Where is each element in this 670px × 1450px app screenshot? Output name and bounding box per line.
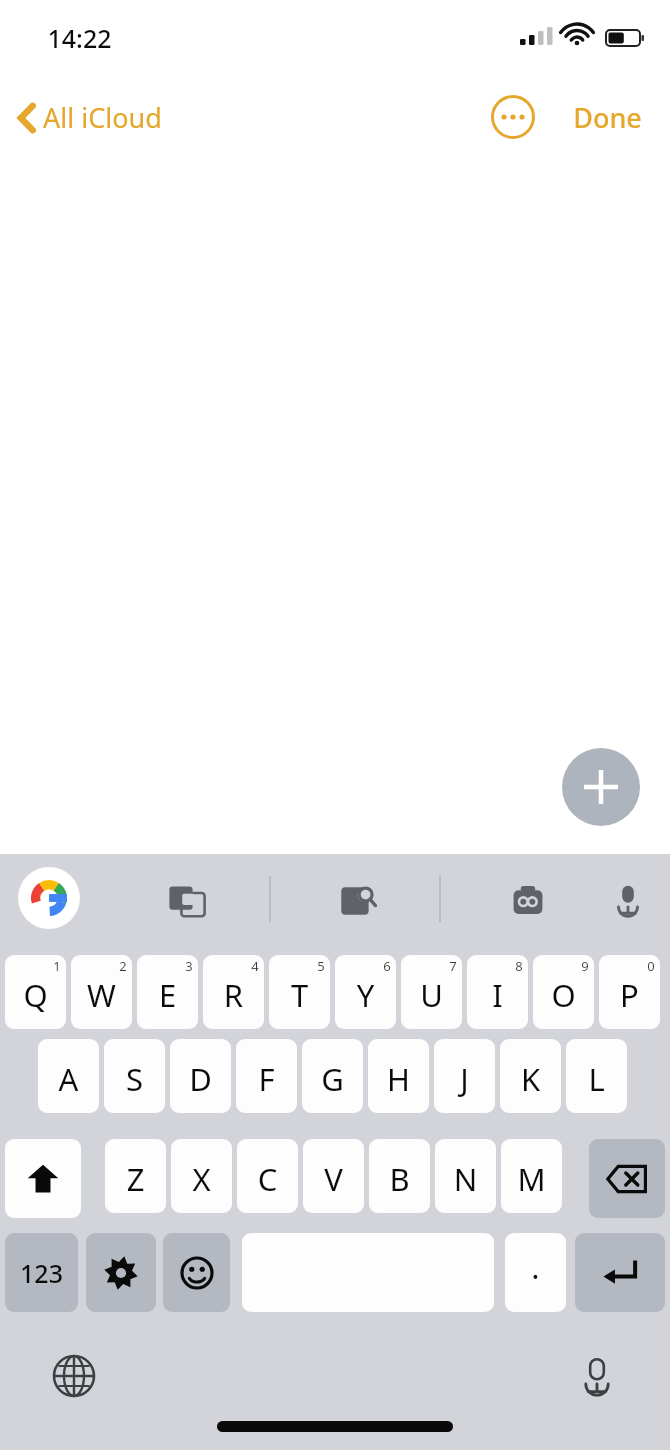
button[interactable]: Add note (562, 748, 640, 826)
button[interactable]: J (434, 1039, 495, 1113)
staticText: 4 (251, 957, 259, 975)
button[interactable]: R (203, 955, 264, 1029)
button[interactable]: Stickers (499, 872, 557, 930)
staticText: G (302, 1058, 363, 1100)
staticText: 5 (317, 957, 325, 975)
staticText: S (104, 1058, 165, 1100)
button[interactable]: Y (335, 955, 396, 1029)
staticText: 7 (449, 957, 457, 975)
button[interactable]: D (170, 1039, 231, 1113)
button[interactable]: N (435, 1139, 496, 1213)
staticText: W (71, 974, 132, 1016)
button[interactable]: Image search (329, 872, 387, 930)
staticText: Y (335, 974, 396, 1016)
button[interactable]: A (38, 1039, 99, 1113)
staticText: U (401, 974, 462, 1016)
staticText: N (435, 1158, 496, 1200)
staticText: P (599, 974, 660, 1016)
staticText: K (500, 1058, 561, 1100)
staticText: I (467, 974, 528, 1016)
button[interactable]: Translate (158, 872, 216, 930)
staticText: 0 (647, 957, 655, 975)
button[interactable]: Voice input (600, 872, 656, 928)
staticText: Q (5, 974, 66, 1016)
staticText: A (38, 1058, 99, 1100)
button[interactable]: Q (5, 955, 66, 1029)
staticText: X (171, 1158, 232, 1200)
staticText: M (501, 1158, 562, 1200)
button[interactable]: L (566, 1039, 627, 1113)
button[interactable]: I (467, 955, 528, 1029)
button[interactable]: Voice typing (565, 1344, 629, 1408)
staticText: T (269, 974, 330, 1016)
staticText: B (369, 1158, 430, 1200)
staticText: 1 (53, 957, 61, 975)
staticText: 14:22 (47, 21, 112, 55)
button[interactable]: V (303, 1139, 364, 1213)
staticText: J (434, 1058, 495, 1100)
button[interactable]: B (369, 1139, 430, 1213)
staticText: 3 (185, 957, 193, 975)
staticText: V (303, 1158, 364, 1200)
button[interactable]: Change language (42, 1344, 106, 1408)
button[interactable]: Enter (575, 1233, 665, 1312)
staticText: Done (573, 99, 642, 136)
button[interactable]: W (71, 955, 132, 1029)
staticText: 8 (515, 957, 523, 975)
staticText: D (170, 1058, 231, 1100)
button[interactable]: Google search (18, 867, 80, 929)
staticText: O (533, 974, 594, 1016)
staticText: E (137, 974, 198, 1016)
button[interactable]: F (236, 1039, 297, 1113)
staticText: C (237, 1158, 298, 1200)
button[interactable]: Done (565, 93, 650, 142)
button[interactable]: E (137, 955, 198, 1029)
staticText: 9 (581, 957, 589, 975)
button[interactable]: X (171, 1139, 232, 1213)
button[interactable]: U (401, 955, 462, 1029)
staticText: L (566, 1058, 627, 1100)
staticText: R (203, 974, 264, 1016)
staticText: 123 (20, 1256, 63, 1290)
button[interactable]: H (368, 1039, 429, 1113)
button[interactable]: Z (105, 1139, 166, 1213)
button[interactable]: 123 (5, 1233, 78, 1312)
button[interactable]: K (500, 1039, 561, 1113)
button[interactable]: . (505, 1233, 566, 1312)
button[interactable]: More options (486, 90, 540, 144)
button[interactable]: O (533, 955, 594, 1029)
staticText: F (236, 1058, 297, 1100)
button[interactable]: C (237, 1139, 298, 1213)
staticText: Z (105, 1158, 166, 1200)
button[interactable]: P (599, 955, 660, 1029)
button[interactable]: Backspace (589, 1139, 665, 1218)
button[interactable]: S (104, 1039, 165, 1113)
staticText: . (531, 1246, 540, 1288)
button[interactable]: T (269, 955, 330, 1029)
staticText: H (368, 1058, 429, 1100)
button[interactable]: Emoji (163, 1233, 230, 1312)
staticText: All iCloud (43, 99, 162, 136)
button[interactable]: Shift (5, 1139, 81, 1218)
staticText: 2 (119, 957, 127, 975)
button[interactable]: M (501, 1139, 562, 1213)
button[interactable]: Keyboard settings (86, 1233, 156, 1312)
button[interactable]: All iCloud (8, 93, 172, 142)
button[interactable]: G (302, 1039, 363, 1113)
staticText: 6 (383, 957, 391, 975)
